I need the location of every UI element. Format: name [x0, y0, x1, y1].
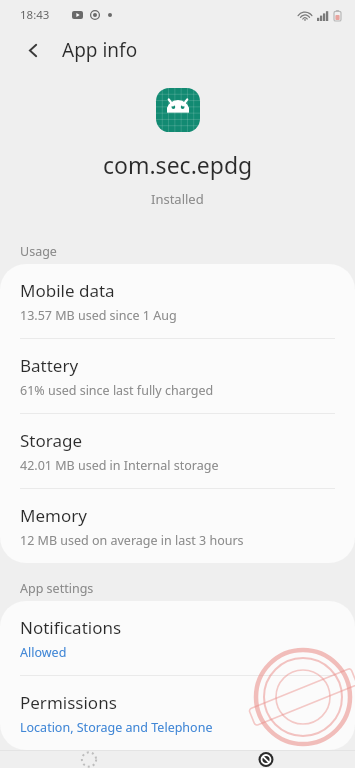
staticText: 12 MB used on average in last 3 hours: [20, 532, 244, 549]
staticText: 18:43: [20, 7, 50, 23]
staticText: Notifications: [20, 616, 122, 639]
staticText: Location, Storage and Telephone: [20, 719, 213, 736]
button[interactable]: Disable: [0, 751, 177, 768]
staticText: Permissions: [20, 691, 117, 714]
staticText: 13.57 MB used since 1 Aug: [20, 307, 177, 324]
button[interactable]: Battery: [0, 339, 355, 414]
button[interactable]: Mobile data: [0, 264, 355, 339]
staticText: Installed: [151, 190, 204, 208]
staticText: Usage: [20, 243, 57, 260]
button[interactable]: Back: [16, 33, 50, 67]
staticText: Storage: [20, 429, 83, 452]
staticText: Battery: [20, 354, 79, 377]
staticText: 61% used since last fully charged: [20, 382, 214, 399]
button[interactable]: Memory: [0, 489, 355, 563]
button[interactable]: Permissions: [0, 676, 355, 750]
staticText: Allowed: [20, 644, 67, 661]
staticText: Mobile data: [20, 279, 115, 302]
staticText: 42.01 MB used in Internal storage: [20, 457, 219, 474]
staticText: Memory: [20, 504, 87, 527]
staticText: App settings: [20, 580, 94, 597]
button[interactable]: Storage: [0, 414, 355, 489]
button[interactable]: Force stop: [177, 751, 355, 768]
staticText: App info: [62, 37, 138, 63]
button[interactable]: Notifications: [0, 601, 355, 676]
staticText: com.sec.epdg: [103, 149, 253, 180]
